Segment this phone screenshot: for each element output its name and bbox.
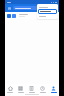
button[interactable]: Home xyxy=(5,84,15,93)
button[interactable] xyxy=(13,6,52,10)
button[interactable] xyxy=(38,9,57,14)
button[interactable]: Account xyxy=(48,84,59,93)
button[interactable]: Recent xyxy=(37,84,48,93)
button[interactable]: More options xyxy=(53,6,57,10)
button[interactable]: Docs xyxy=(12,14,16,18)
button[interactable] xyxy=(37,14,58,18)
button[interactable]: Menu xyxy=(7,6,12,11)
button[interactable] xyxy=(37,5,58,9)
button[interactable]: Documents xyxy=(26,84,37,93)
button[interactable]: Drive xyxy=(7,14,11,18)
button[interactable]: Apps xyxy=(15,84,26,93)
